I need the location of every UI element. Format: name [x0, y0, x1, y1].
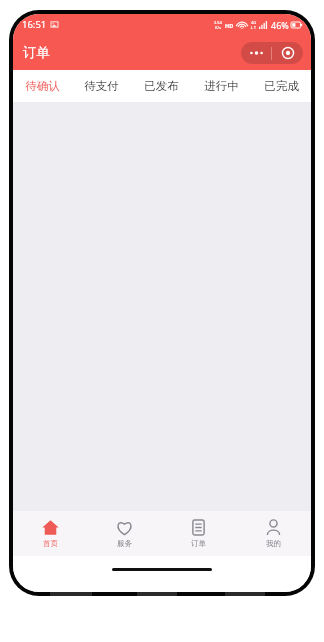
staticText: 3.54	[214, 20, 222, 25]
staticText: HD	[225, 22, 234, 29]
staticText: 待支付	[84, 79, 119, 93]
button[interactable]: 我的	[236, 511, 311, 556]
staticText: 进行中	[204, 79, 239, 93]
button[interactable]: 订单	[161, 511, 236, 556]
staticText: 我的	[266, 539, 281, 548]
staticText: 首页	[43, 539, 58, 548]
staticText: 16:51	[22, 18, 47, 31]
staticText: 4G	[251, 20, 257, 25]
staticText: ↓↑	[250, 25, 257, 30]
button[interactable]: 服务	[87, 511, 161, 556]
button[interactable]: More options	[241, 42, 271, 64]
staticText: 已发布	[144, 79, 179, 93]
staticText: 已完成	[264, 79, 299, 93]
button[interactable]: Close mini program	[272, 42, 303, 64]
button[interactable]: 待支付	[72, 70, 131, 102]
button[interactable]: 首页	[13, 511, 87, 556]
button[interactable]: 已完成	[251, 70, 311, 102]
button[interactable]: 进行中	[191, 70, 251, 102]
button[interactable]: 待确认	[13, 70, 72, 102]
staticText: 订单	[191, 539, 206, 548]
staticText: K/s	[215, 25, 221, 30]
staticText: 待确认	[25, 79, 60, 93]
button[interactable]: 已发布	[131, 70, 191, 102]
staticText: 46%	[271, 19, 289, 31]
staticText: 订单	[23, 44, 50, 61]
staticText: 服务	[117, 539, 132, 548]
